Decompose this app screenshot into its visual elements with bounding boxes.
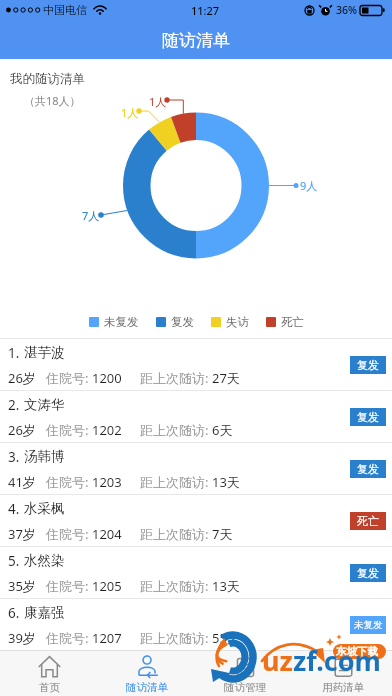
staticText: 复发: [357, 566, 379, 580]
staticText: 住院号:: [46, 525, 92, 543]
staticText: 4.: [8, 500, 20, 518]
button[interactable]: 5.: [0, 546, 392, 598]
staticText: 康嘉强: [24, 604, 65, 621]
staticText: 水然染: [24, 552, 65, 569]
staticText: 5.: [8, 552, 20, 570]
staticText: 37岁: [8, 525, 36, 543]
staticText: 39岁: [8, 629, 36, 647]
staticText: 中国电信: [43, 3, 87, 17]
staticText: 距上次随访:: [140, 629, 212, 647]
staticText: 9人: [300, 178, 318, 193]
staticText: 复发: [357, 410, 379, 424]
staticText: 未复发: [104, 315, 139, 329]
staticText: 住院号:: [46, 421, 92, 439]
staticText: 死亡: [281, 315, 304, 329]
staticText: 汤韩博: [24, 448, 65, 465]
button[interactable]: 未复发: [350, 616, 386, 634]
staticText: 随访清单: [162, 30, 230, 51]
staticText: 6.: [8, 604, 20, 622]
staticText: 随访管理: [224, 681, 266, 694]
button[interactable]: 复发: [350, 356, 386, 374]
button[interactable]: 随访清单: [98, 650, 196, 696]
staticText: 41岁: [8, 473, 36, 491]
button[interactable]: 6.: [0, 598, 392, 650]
button[interactable]: 死亡: [350, 512, 386, 530]
button[interactable]: 用药清单: [294, 650, 392, 696]
staticText: 1人: [149, 94, 167, 109]
staticText: 东坡下载: [336, 645, 378, 658]
staticText: 随访清单: [126, 681, 168, 694]
staticText: 36%: [336, 3, 357, 17]
button[interactable]: 复发: [350, 408, 386, 426]
staticText: 26岁: [8, 369, 36, 387]
staticText: 1200: [92, 369, 122, 387]
staticText: 2.: [8, 396, 20, 414]
staticText: 复发: [357, 358, 379, 372]
staticText: 我的随访清单: [10, 71, 85, 87]
staticText: 11:27: [191, 3, 220, 18]
staticText: 7天: [212, 525, 233, 543]
staticText: 水采枫: [24, 500, 65, 517]
staticText: 13天: [212, 577, 240, 595]
staticText: 距上次随访:: [140, 473, 212, 491]
button[interactable]: 4.: [0, 494, 392, 546]
staticText: 7人: [82, 208, 100, 223]
staticText: （共18人）: [24, 93, 81, 108]
staticText: 复发: [171, 315, 194, 329]
staticText: 未复发: [354, 619, 383, 631]
staticText: 失访: [226, 315, 249, 329]
button[interactable]: 3.: [0, 442, 392, 494]
staticText: 首页: [39, 681, 60, 694]
staticText: 3.: [8, 448, 20, 466]
staticText: 距上次随访:: [140, 525, 212, 543]
staticText: 27天: [212, 369, 240, 387]
staticText: 1207: [92, 629, 122, 647]
button[interactable]: 首页: [0, 650, 98, 696]
staticText: 住院号:: [46, 577, 92, 595]
staticText: 距上次随访:: [140, 369, 212, 387]
staticText: 文涛华: [24, 396, 65, 413]
button[interactable]: 复发: [350, 564, 386, 582]
button[interactable]: 复发: [350, 460, 386, 478]
staticText: 用药清单: [322, 681, 364, 694]
staticText: 1203: [92, 473, 122, 491]
staticText: 1202: [92, 421, 122, 439]
staticText: 26岁: [8, 421, 36, 439]
staticText: 湛芋波: [24, 344, 65, 361]
staticText: 6天: [212, 421, 233, 439]
staticText: 1.: [8, 344, 20, 362]
staticText: 住院号:: [46, 473, 92, 491]
staticText: 住院号:: [46, 369, 92, 387]
button[interactable]: 1.: [0, 338, 392, 390]
staticText: 1人: [121, 105, 139, 120]
staticText: 住院号:: [46, 629, 92, 647]
staticText: uz: [262, 642, 293, 679]
staticText: 13天: [212, 473, 240, 491]
staticText: 55天: [212, 629, 240, 647]
button[interactable]: 随访管理: [196, 650, 294, 696]
staticText: 1204: [92, 525, 122, 543]
staticText: zf.com: [293, 642, 381, 679]
staticText: 复发: [357, 462, 379, 476]
button[interactable]: 2.: [0, 390, 392, 442]
staticText: 距上次随访:: [140, 421, 212, 439]
staticText: 1205: [92, 577, 122, 595]
staticText: 距上次随访:: [140, 577, 212, 595]
staticText: 死亡: [357, 514, 379, 528]
staticText: 35岁: [8, 577, 36, 595]
